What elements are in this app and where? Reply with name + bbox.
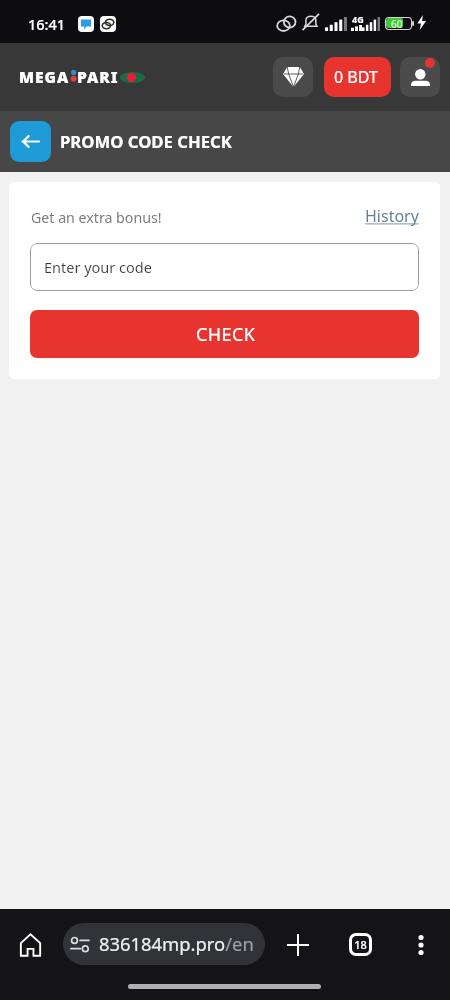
staticText: 16:41 bbox=[28, 14, 66, 34]
button[interactable]: Bonuses bbox=[273, 57, 313, 97]
staticText: 18 bbox=[354, 937, 367, 952]
button[interactable]: Back bbox=[10, 121, 51, 162]
button[interactable]: Profile bbox=[400, 57, 440, 97]
button[interactable]: New tab bbox=[281, 928, 314, 961]
staticText: MEGA bbox=[19, 66, 70, 87]
staticText: PROMO CODE CHECK bbox=[60, 130, 232, 153]
button[interactable]: History bbox=[365, 205, 419, 227]
staticText: 60 bbox=[391, 18, 403, 28]
staticText: Get an extra bonus! bbox=[31, 208, 162, 227]
staticText: 0 BDT bbox=[334, 66, 378, 88]
button[interactable]: Enter your code bbox=[30, 243, 419, 291]
button[interactable]: CHECK bbox=[30, 310, 419, 358]
button[interactable]: 0 BDT bbox=[324, 57, 391, 97]
button[interactable]: Tabs bbox=[344, 928, 377, 961]
staticText: 4G bbox=[352, 13, 364, 25]
button[interactable]: Home bbox=[14, 928, 47, 961]
staticText: PARI bbox=[77, 66, 119, 87]
staticText: CHECK bbox=[196, 322, 256, 347]
button[interactable]: More options bbox=[404, 928, 437, 961]
button[interactable]: 836184mp.pro/en bbox=[63, 923, 265, 965]
staticText: Enter your code bbox=[44, 257, 152, 277]
staticText: 836184mp.pro/en bbox=[99, 931, 254, 956]
